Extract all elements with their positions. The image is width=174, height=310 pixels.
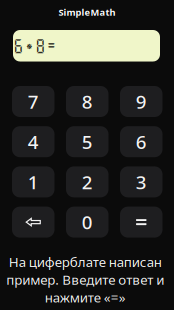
- staticText: 6*8=: [13, 37, 57, 54]
- button[interactable]: 0: [66, 207, 108, 238]
- button[interactable]: Backspace: [12, 207, 54, 238]
- button[interactable]: 8: [66, 86, 108, 117]
- button[interactable]: 5: [66, 126, 108, 157]
- staticText: 0: [82, 210, 93, 234]
- staticText: 8: [82, 89, 93, 114]
- staticText: 4: [28, 129, 39, 154]
- staticText: 1: [28, 169, 39, 194]
- staticText: 3: [136, 169, 147, 194]
- staticText: 2: [82, 169, 93, 194]
- staticText: 7: [28, 89, 39, 114]
- button[interactable]: 9: [120, 86, 162, 117]
- button[interactable]: Equals: [120, 207, 162, 238]
- staticText: На циферблате написан пример. Введите от…: [6, 253, 164, 306]
- staticText: 5: [82, 129, 93, 154]
- staticText: 9: [136, 89, 147, 114]
- staticText: 6: [136, 129, 147, 154]
- button[interactable]: 1: [12, 166, 54, 197]
- button[interactable]: 6: [120, 126, 162, 157]
- staticText: SimpleMath: [58, 6, 115, 18]
- button[interactable]: 7: [12, 86, 54, 117]
- button[interactable]: 2: [66, 166, 108, 197]
- button[interactable]: 4: [12, 126, 54, 157]
- button[interactable]: 3: [120, 166, 162, 197]
